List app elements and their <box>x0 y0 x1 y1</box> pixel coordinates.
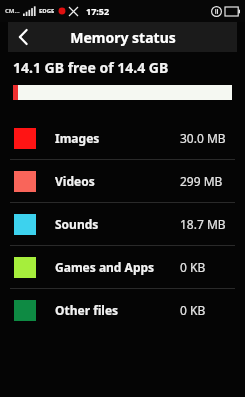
staticText: 0 KB <box>180 259 206 275</box>
staticText: 18.7 MB <box>180 216 226 232</box>
staticText: Sounds <box>55 216 99 232</box>
staticText: 0 KB <box>180 302 206 318</box>
staticText: Videos <box>55 173 95 189</box>
staticText: 299 MB <box>180 173 223 189</box>
staticText: Images <box>55 130 100 146</box>
staticText: Other files <box>55 302 119 318</box>
button[interactable]: Other files <box>0 289 245 331</box>
staticText: 17:52 <box>86 5 110 17</box>
staticText: Memory status <box>70 28 176 47</box>
button[interactable]: Sounds <box>0 203 245 245</box>
staticText: 14.1 GB free of 14.4 GB <box>13 58 169 77</box>
staticText: 30.0 MB <box>180 130 226 146</box>
button[interactable]: Images <box>0 117 245 159</box>
button[interactable]: Back <box>8 22 38 52</box>
staticText: Games and Apps <box>55 259 155 275</box>
staticText: EDGE <box>39 7 55 15</box>
button[interactable]: Videos <box>0 160 245 202</box>
staticText: CM... <box>5 7 20 15</box>
button[interactable]: Games and Apps <box>0 246 245 288</box>
